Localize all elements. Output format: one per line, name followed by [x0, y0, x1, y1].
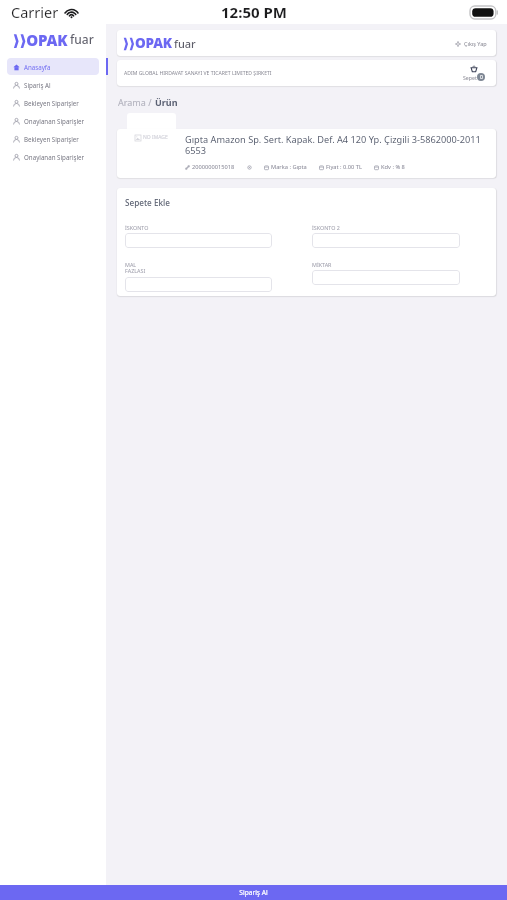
staticText: Carrier	[11, 2, 59, 22]
staticText: Anasayfa	[24, 63, 51, 71]
button[interactable]: Anasayfa	[7, 58, 99, 75]
button[interactable]: Sepet	[463, 66, 485, 81]
staticText: Sipariş Al	[239, 888, 268, 897]
staticText: ⟩⟩OPAK	[123, 34, 172, 52]
staticText: ADIM GLOBAL HIRDAVAT SANAYI VE TICARET L…	[124, 70, 272, 77]
staticText: Sepete Ekle	[125, 197, 170, 208]
button[interactable]: Bekleyen Siparişler	[7, 130, 99, 147]
staticText: MİKTAR	[312, 261, 332, 268]
staticText: fuar	[70, 31, 94, 47]
staticText: NO IMAGE	[143, 134, 168, 141]
staticText: 0	[480, 74, 483, 81]
button[interactable]: Onaylanan Siparişler	[7, 112, 99, 129]
staticText: Sipariş Al	[24, 81, 51, 89]
staticText: Kdv : % 8	[381, 163, 405, 171]
staticText: Ürün	[155, 96, 178, 108]
staticText: Onaylanan Siparişler	[24, 153, 85, 161]
staticText: ⟩⟩OPAK	[13, 30, 68, 48]
staticText: Bekleyen Siparişler	[24, 99, 79, 107]
staticText: 12:50 PM	[221, 2, 287, 22]
staticText: Onaylanan Siparişler	[24, 117, 85, 125]
button[interactable]	[125, 233, 272, 248]
button[interactable]: Sipariş Al	[0, 885, 507, 900]
staticText: /	[146, 96, 155, 108]
staticText: İSKONTO 2	[312, 224, 340, 231]
staticText: MAL FAZLASI	[125, 261, 146, 275]
staticText: Gıpta Amazon Sp. Sert. Kapak. Def. A4 12…	[185, 133, 492, 157]
button[interactable]	[312, 233, 460, 248]
staticText: Bekleyen Siparişler	[24, 135, 79, 143]
staticText: Çıkış Yap	[464, 40, 487, 47]
staticText: Sepet	[463, 74, 477, 81]
staticText: fuar	[174, 36, 196, 51]
button[interactable]: Bekleyen Siparişler	[7, 94, 99, 111]
staticText: İSKONTO	[125, 224, 149, 231]
staticText: 2000000015018	[192, 163, 235, 171]
button[interactable]: Onaylanan Siparişler	[7, 148, 99, 165]
button[interactable]: Sipariş Al	[7, 76, 99, 93]
staticText: Marka : Gıpta	[271, 163, 307, 171]
staticText: Fiyat : 0.00 TL	[326, 163, 362, 171]
button[interactable]	[125, 277, 272, 292]
button[interactable]: Çıkış Yap	[455, 40, 487, 47]
button[interactable]	[312, 270, 460, 285]
staticText: Arama	[118, 96, 146, 108]
